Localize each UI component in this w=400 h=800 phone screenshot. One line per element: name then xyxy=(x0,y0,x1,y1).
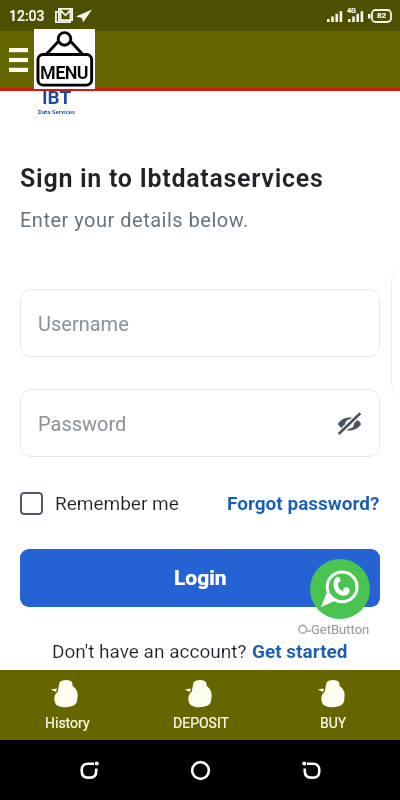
button[interactable]: Password xyxy=(20,389,380,457)
staticText: IBT xyxy=(42,86,72,108)
staticText: Password xyxy=(38,412,127,435)
button[interactable]: Home xyxy=(178,748,222,792)
staticText: Get started xyxy=(252,640,348,662)
button[interactable]: Login xyxy=(20,549,380,607)
button[interactable]: Remember me xyxy=(20,490,179,516)
button[interactable]: Forgot password? xyxy=(227,490,380,516)
staticText: 12:03 xyxy=(9,8,45,24)
staticText: Login xyxy=(174,566,227,591)
button[interactable]: Open navigation menu xyxy=(3,42,33,78)
staticText: MENU xyxy=(40,62,89,83)
staticText: GetButton xyxy=(311,622,370,637)
staticText: 4G xyxy=(347,7,356,15)
button[interactable]: Username xyxy=(20,289,380,357)
staticText: DEPOSIT xyxy=(173,715,229,731)
staticText: Forgot password? xyxy=(227,492,380,514)
staticText: BUY xyxy=(320,715,347,731)
staticText: History xyxy=(45,715,90,731)
button[interactable]: Recent apps xyxy=(67,748,111,792)
button[interactable]: DEPOSIT xyxy=(134,670,267,740)
staticText: 82 xyxy=(377,11,387,20)
staticText: Data Services xyxy=(38,108,76,115)
button[interactable]: Get started xyxy=(252,640,348,662)
staticText: Sign in to Ibtdataservices xyxy=(20,164,324,193)
staticText: Remember me xyxy=(55,492,179,514)
button[interactable]: Show password xyxy=(332,406,366,440)
button[interactable]: BUY xyxy=(267,670,400,740)
staticText: Username xyxy=(38,312,129,335)
button[interactable]: Chat on WhatsApp xyxy=(310,559,370,619)
button[interactable]: Back xyxy=(289,748,333,792)
staticText: Enter your details below. xyxy=(20,208,249,231)
staticText: Don't have an account? xyxy=(52,640,252,662)
button[interactable]: History xyxy=(0,670,134,740)
